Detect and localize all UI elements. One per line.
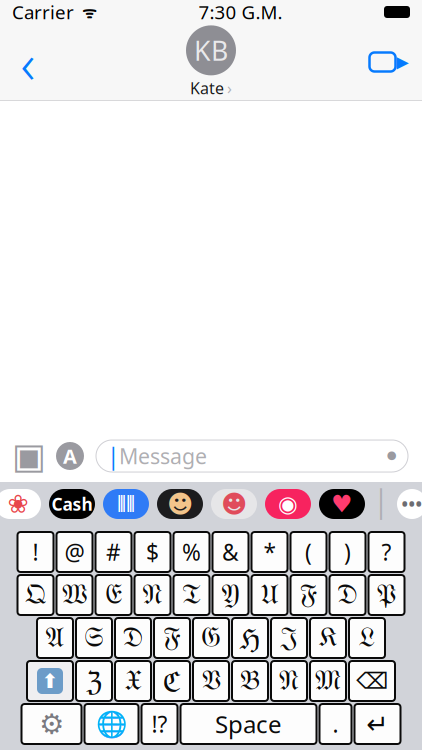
button[interactable]: ℭ (154, 661, 190, 701)
staticText: ‹ (20, 25, 35, 99)
staticText: ? (381, 537, 391, 567)
staticText: 𝔈 (105, 581, 122, 609)
staticText: ❀ (7, 490, 28, 518)
button[interactable]: App (103, 489, 149, 519)
staticText: │ (373, 489, 389, 519)
staticText: 𝔄 (45, 624, 64, 652)
button[interactable]: App (157, 489, 203, 519)
staticText: 𝔇 (122, 624, 143, 652)
button[interactable]: ( (290, 532, 326, 572)
button[interactable]: 𝔓 (368, 575, 404, 615)
button[interactable]: * (251, 532, 287, 572)
button[interactable]: ? (368, 532, 404, 572)
button[interactable]: ! (17, 532, 53, 572)
button[interactable]: $ (134, 532, 170, 572)
button[interactable]: App Store (56, 442, 84, 470)
button[interactable]: 𝔄 (37, 618, 73, 658)
button[interactable]: !? (141, 704, 177, 744)
button[interactable]: 𝔘 (251, 575, 287, 615)
button[interactable]: 𝔗 (173, 575, 209, 615)
button[interactable]: 𝔑 (271, 661, 307, 701)
staticText: 𝔙 (201, 667, 220, 695)
staticText: # (106, 537, 121, 567)
button[interactable]: 𝔖 (76, 618, 112, 658)
staticText: ♥ (331, 490, 353, 518)
button[interactable]: 𝔈 (95, 575, 131, 615)
button[interactable]: Delete (349, 661, 395, 701)
staticText: 𝔇 (337, 581, 358, 609)
button[interactable]: App (211, 489, 257, 519)
button[interactable]: # (95, 532, 131, 572)
button[interactable]: 𝔉 (290, 575, 326, 615)
staticText: $ (146, 537, 159, 567)
button[interactable]: % (173, 532, 209, 572)
staticText: 𝔚 (62, 581, 87, 609)
button[interactable]: @ (56, 532, 92, 572)
button[interactable]: Next keyboard (84, 704, 138, 744)
button[interactable]: 𝔑 (134, 575, 170, 615)
button[interactable]: 𝔚 (56, 575, 92, 615)
staticText: ⦀⦀ (117, 494, 135, 514)
staticText: @ (64, 537, 84, 567)
button[interactable]: 𝔛 (115, 661, 151, 701)
button[interactable]: App (49, 489, 95, 519)
button[interactable]: 𝔊 (193, 618, 229, 658)
staticText: ℨ (86, 662, 102, 700)
staticText: ▣ (12, 436, 46, 476)
staticText: Kate (190, 77, 224, 99)
staticText: 𝔓 (376, 581, 396, 609)
staticText: KB (194, 33, 228, 68)
button[interactable]: ) (329, 532, 365, 572)
staticText: ☻ (167, 490, 193, 518)
button[interactable]: & (212, 532, 248, 572)
button[interactable]: ℨ (76, 661, 112, 701)
staticText: ↵ (366, 709, 388, 739)
staticText: ℌ (239, 619, 260, 657)
button[interactable]: | (96, 440, 408, 472)
staticText: ⚙ (39, 708, 64, 740)
staticText: 𝔉 (299, 581, 317, 609)
button[interactable]: Settings (21, 704, 81, 744)
staticText: Message (119, 442, 207, 470)
button[interactable]: 𝔜 (212, 575, 248, 615)
staticText: ☻ (221, 490, 247, 518)
button[interactable]: 𝔇 (329, 575, 365, 615)
staticText: % (182, 537, 201, 567)
button[interactable]: 𝔏 (349, 618, 385, 658)
staticText: 𝔔 (25, 581, 46, 609)
button[interactable]: FaceTime (362, 34, 416, 90)
staticText: 𝔛 (124, 667, 141, 695)
staticText: 𝔅 (240, 667, 260, 695)
button[interactable]: 𝔔 (17, 575, 53, 615)
button[interactable]: 𝔍 (271, 618, 307, 658)
button[interactable]: 𝔅 (232, 661, 268, 701)
staticText: 7:30 G.M. (198, 0, 282, 24)
staticText: !? (151, 709, 167, 739)
button[interactable]: 𝔎 (310, 618, 346, 658)
button[interactable]: More apps (397, 489, 422, 519)
staticText: ▶ (396, 53, 408, 71)
button[interactable]: App (0, 489, 41, 519)
button[interactable]: KB (186, 25, 236, 99)
button[interactable]: 𝔇 (115, 618, 151, 658)
button[interactable]: App (319, 489, 365, 519)
staticText: 𝔏 (358, 624, 375, 652)
button[interactable]: 𝔉 (154, 618, 190, 658)
button[interactable]: App (265, 489, 311, 519)
button[interactable]: Camera (14, 441, 44, 471)
button[interactable]: 𝔐 (310, 661, 346, 701)
button[interactable]: Back (6, 34, 50, 90)
button[interactable]: Shift (27, 661, 73, 701)
button[interactable]: ℌ (232, 618, 268, 658)
staticText: 𝔘 (260, 581, 278, 609)
button[interactable]: Space (180, 704, 316, 744)
staticText: 🌐 (95, 709, 127, 738)
button[interactable]: . (319, 704, 351, 744)
button[interactable]: Return (354, 704, 400, 744)
button[interactable]: 𝔙 (193, 661, 229, 701)
staticText: ! (32, 537, 38, 567)
staticText: ⌫ (356, 668, 388, 694)
staticText: 𝔜 (221, 581, 239, 609)
staticText: Carrier (12, 0, 74, 24)
staticText: ) (344, 537, 351, 567)
